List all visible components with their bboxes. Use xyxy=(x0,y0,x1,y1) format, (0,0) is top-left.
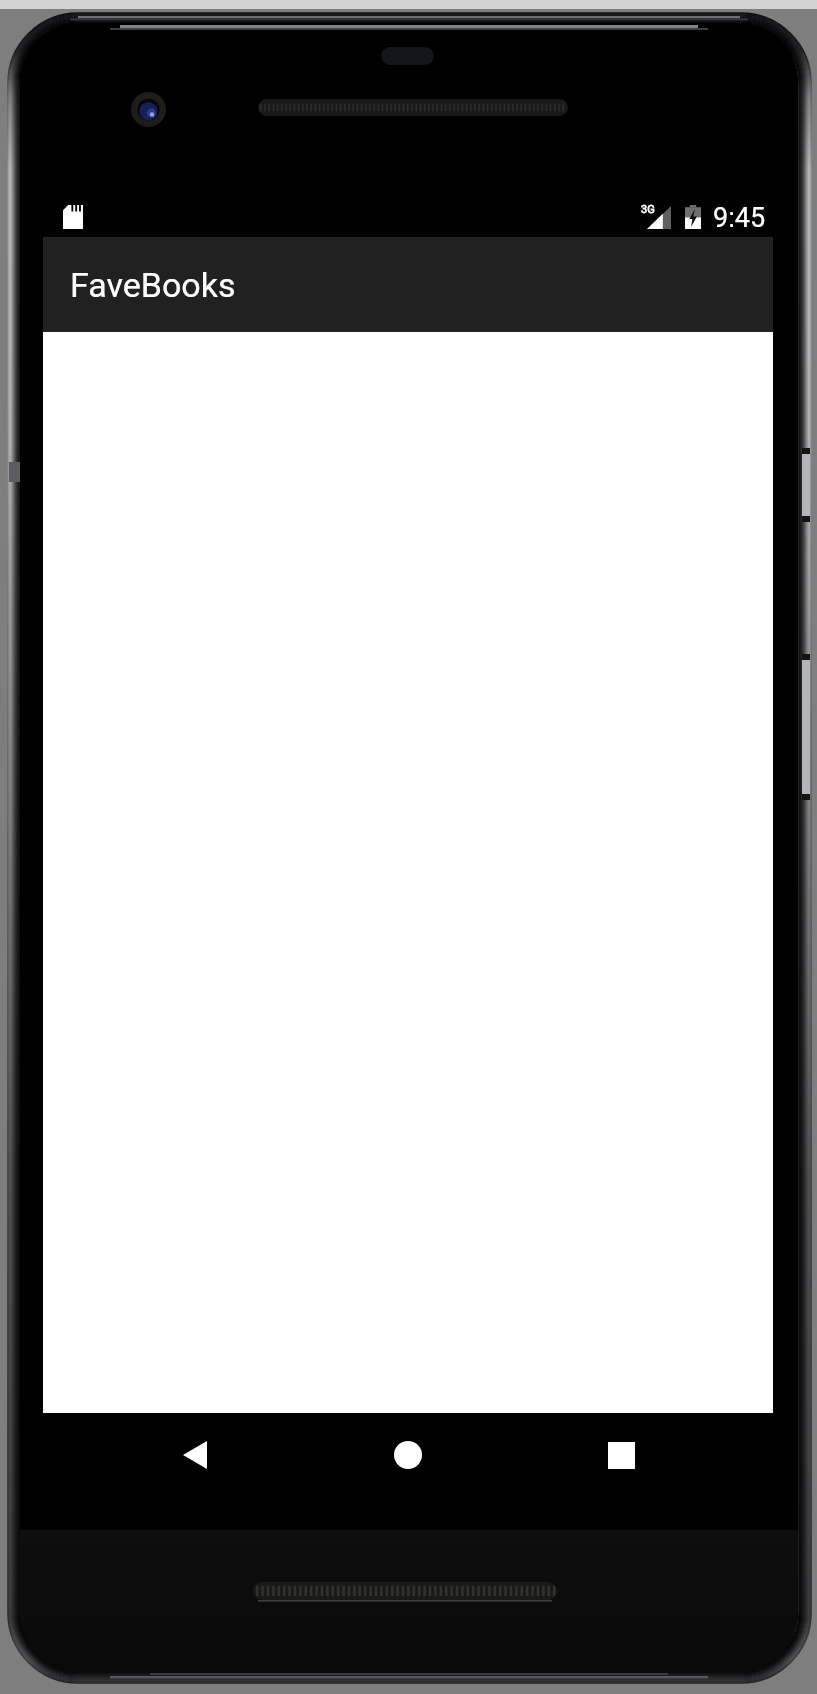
staticText: 9:45 xyxy=(713,202,766,234)
staticText: FaveBooks xyxy=(70,265,236,305)
button[interactable]: Back xyxy=(140,1413,250,1493)
button[interactable]: FaveBooks xyxy=(43,237,773,332)
button[interactable]: Recent apps xyxy=(566,1413,676,1493)
button[interactable]: Home xyxy=(353,1413,463,1493)
staticText: 3G xyxy=(641,203,655,216)
